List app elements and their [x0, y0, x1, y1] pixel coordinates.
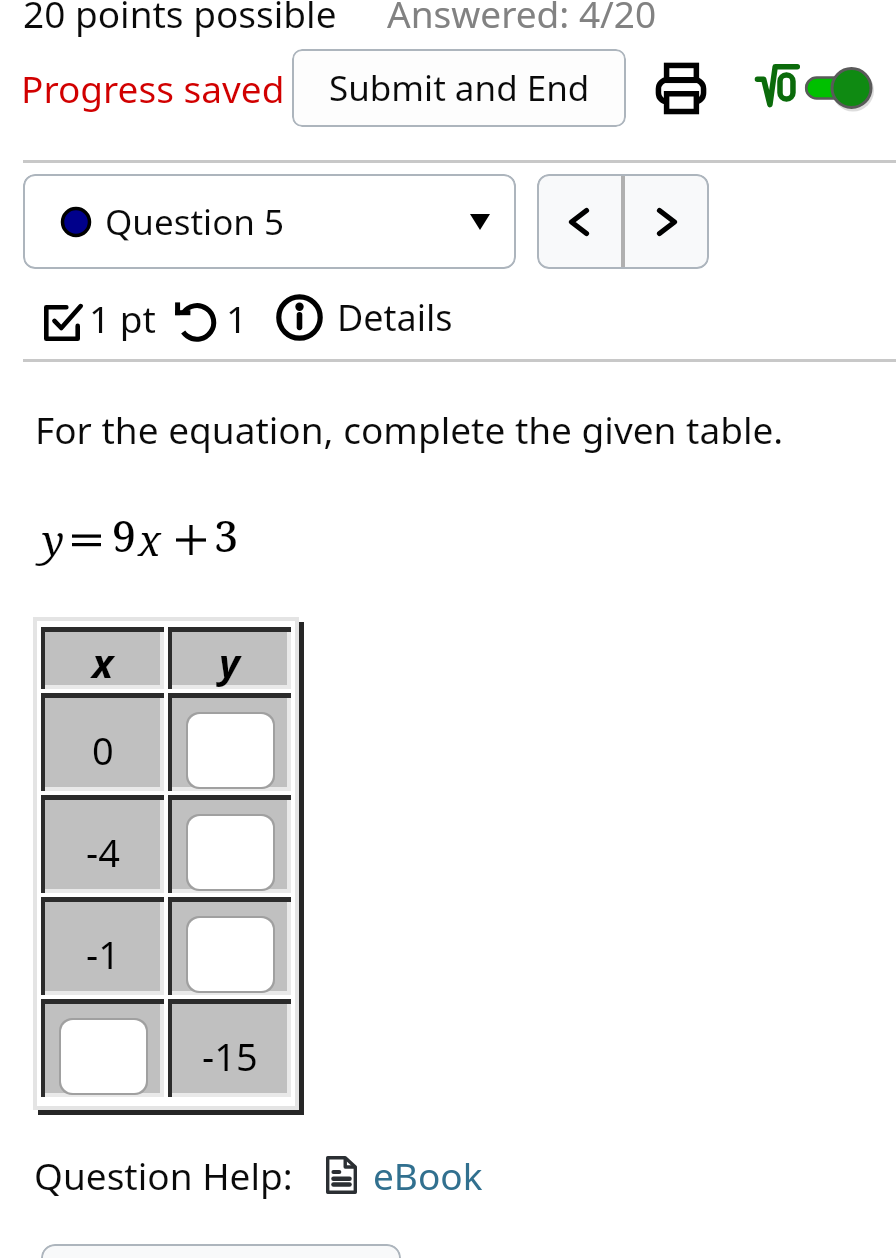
staticText: For the equation, complete the given tab… [35, 404, 784, 454]
staticText: Question Help: [34, 1150, 293, 1200]
button[interactable]: Toggle math input [805, 68, 871, 108]
staticText: Answered: 4/20 [387, 0, 657, 38]
button[interactable]: Next question [625, 174, 709, 269]
staticText: Progress saved [21, 63, 285, 113]
staticText: 0 [92, 724, 114, 776]
button[interactable]: Question 5 [23, 174, 516, 269]
button[interactable]: Submit and End [292, 49, 626, 127]
staticText: 20 points possible [23, 0, 337, 38]
button[interactable] [41, 1244, 401, 1258]
button[interactable] [188, 816, 273, 889]
button[interactable]: eBook [326, 1150, 483, 1200]
staticText: 1 [226, 293, 248, 341]
staticText: 9 [112, 506, 137, 565]
button[interactable]: Previous question [537, 174, 621, 269]
staticText: eBook [373, 1150, 483, 1200]
staticText: Submit and End [329, 64, 590, 112]
staticText: 1 pt [89, 293, 156, 341]
staticText: -15 [202, 1030, 258, 1082]
staticText: 3 [214, 506, 239, 565]
staticText: -1 [86, 928, 120, 980]
button[interactable] [188, 918, 273, 991]
button[interactable] [61, 1020, 146, 1093]
staticText: x [138, 511, 161, 568]
button[interactable]: Details [276, 293, 453, 341]
button[interactable]: Math keyboard [756, 62, 804, 114]
staticText: x [92, 635, 114, 689]
staticText: y [42, 511, 65, 568]
staticText: Details [337, 293, 453, 341]
staticText: -4 [86, 826, 120, 878]
button[interactable] [188, 714, 273, 787]
button[interactable]: Print [651, 58, 711, 118]
staticText: Question 5 [105, 198, 285, 246]
staticText: y [219, 635, 240, 689]
